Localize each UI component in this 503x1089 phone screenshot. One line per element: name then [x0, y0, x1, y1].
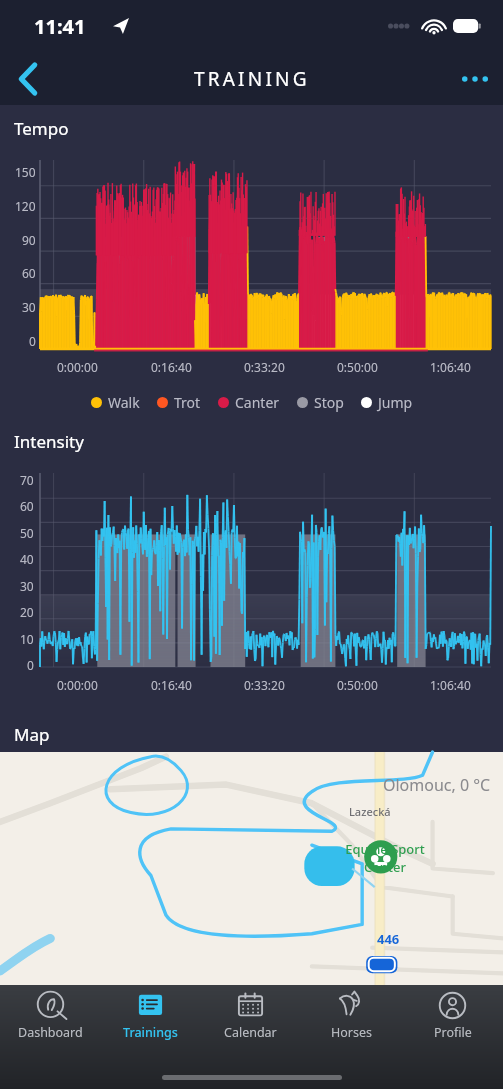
staticText: Profile — [434, 1024, 472, 1041]
staticText: 150 — [15, 164, 36, 180]
staticText: 1:06:40 — [430, 359, 471, 375]
staticText: Stop — [314, 393, 344, 412]
staticText: 40 — [20, 551, 34, 567]
staticText: 70 — [20, 472, 34, 488]
staticText: 0:33:20 — [244, 677, 285, 693]
staticText: 0:00:00 — [57, 677, 98, 693]
button[interactable]: Profile — [402, 991, 503, 1051]
staticText: 60 — [22, 265, 36, 281]
staticText: Map — [14, 723, 50, 746]
staticText: Intensity — [14, 430, 84, 453]
staticText: 90 — [22, 232, 36, 248]
staticText: Trot — [174, 393, 201, 412]
staticText: TRAINING — [194, 66, 310, 92]
button[interactable]: Back — [0, 52, 56, 105]
staticText: 30 — [20, 578, 34, 594]
staticText: Lazecká — [349, 804, 391, 819]
staticText: 50 — [20, 525, 34, 541]
staticText: Tempo — [14, 117, 69, 140]
staticText: Trainings — [123, 1024, 178, 1041]
staticText: 20 — [20, 604, 34, 620]
button[interactable]: Dashboard — [0, 991, 100, 1051]
staticText: Equine Sport Center — [345, 840, 425, 876]
button[interactable]: Trainings — [100, 991, 200, 1051]
staticText: 0:16:40 — [151, 677, 192, 693]
button[interactable]: More options — [447, 52, 503, 105]
staticText: 0:33:20 — [244, 359, 285, 375]
staticText: 10 — [20, 631, 34, 647]
staticText: 446 — [377, 930, 400, 948]
staticText: Olomouc, 0 °C — [383, 774, 491, 796]
staticText: 1:06:40 — [430, 677, 471, 693]
staticText: Dashboard — [18, 1024, 83, 1041]
staticText: 30 — [22, 299, 36, 315]
staticText: 0 — [29, 333, 36, 349]
staticText: Horses — [331, 1024, 373, 1041]
staticText: Walk — [108, 393, 140, 412]
staticText: 0:50:00 — [337, 677, 378, 693]
button[interactable]: Horses — [301, 991, 402, 1051]
button[interactable]: Map — [0, 752, 503, 985]
button[interactable]: Calendar — [200, 991, 301, 1051]
staticText: 0 — [27, 657, 34, 673]
staticText: 0:50:00 — [337, 359, 378, 375]
staticText: Calendar — [224, 1024, 277, 1041]
staticText: 0:16:40 — [151, 359, 192, 375]
staticText: 120 — [15, 198, 36, 214]
staticText: Canter — [235, 393, 280, 412]
staticText: 11:41 — [34, 13, 86, 40]
staticText: 0:00:00 — [57, 359, 98, 375]
staticText: 60 — [20, 498, 34, 514]
staticText: Jump — [378, 393, 413, 412]
